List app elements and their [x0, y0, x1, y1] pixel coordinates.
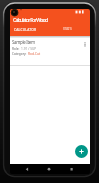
button[interactable]: Sample Item — [10, 38, 90, 65]
staticText: Rod-Cut — [28, 52, 41, 56]
button[interactable] — [36, 164, 63, 174]
button[interactable] — [75, 145, 88, 158]
staticText: STATS — [63, 27, 72, 31]
staticText: Calculator For Wood — [13, 16, 48, 23]
staticText: 1.91 / SUP — [21, 47, 37, 51]
button[interactable] — [82, 41, 88, 49]
staticText: Role: — [12, 47, 21, 51]
button[interactable]: STATS — [50, 25, 90, 36]
button[interactable] — [63, 164, 90, 174]
button[interactable] — [10, 164, 36, 174]
staticText: Sample Item — [12, 39, 35, 45]
button[interactable]: CALCULATOR — [10, 25, 50, 36]
staticText: CALCULATOR — [14, 27, 37, 31]
staticText: Category: — [12, 52, 28, 56]
